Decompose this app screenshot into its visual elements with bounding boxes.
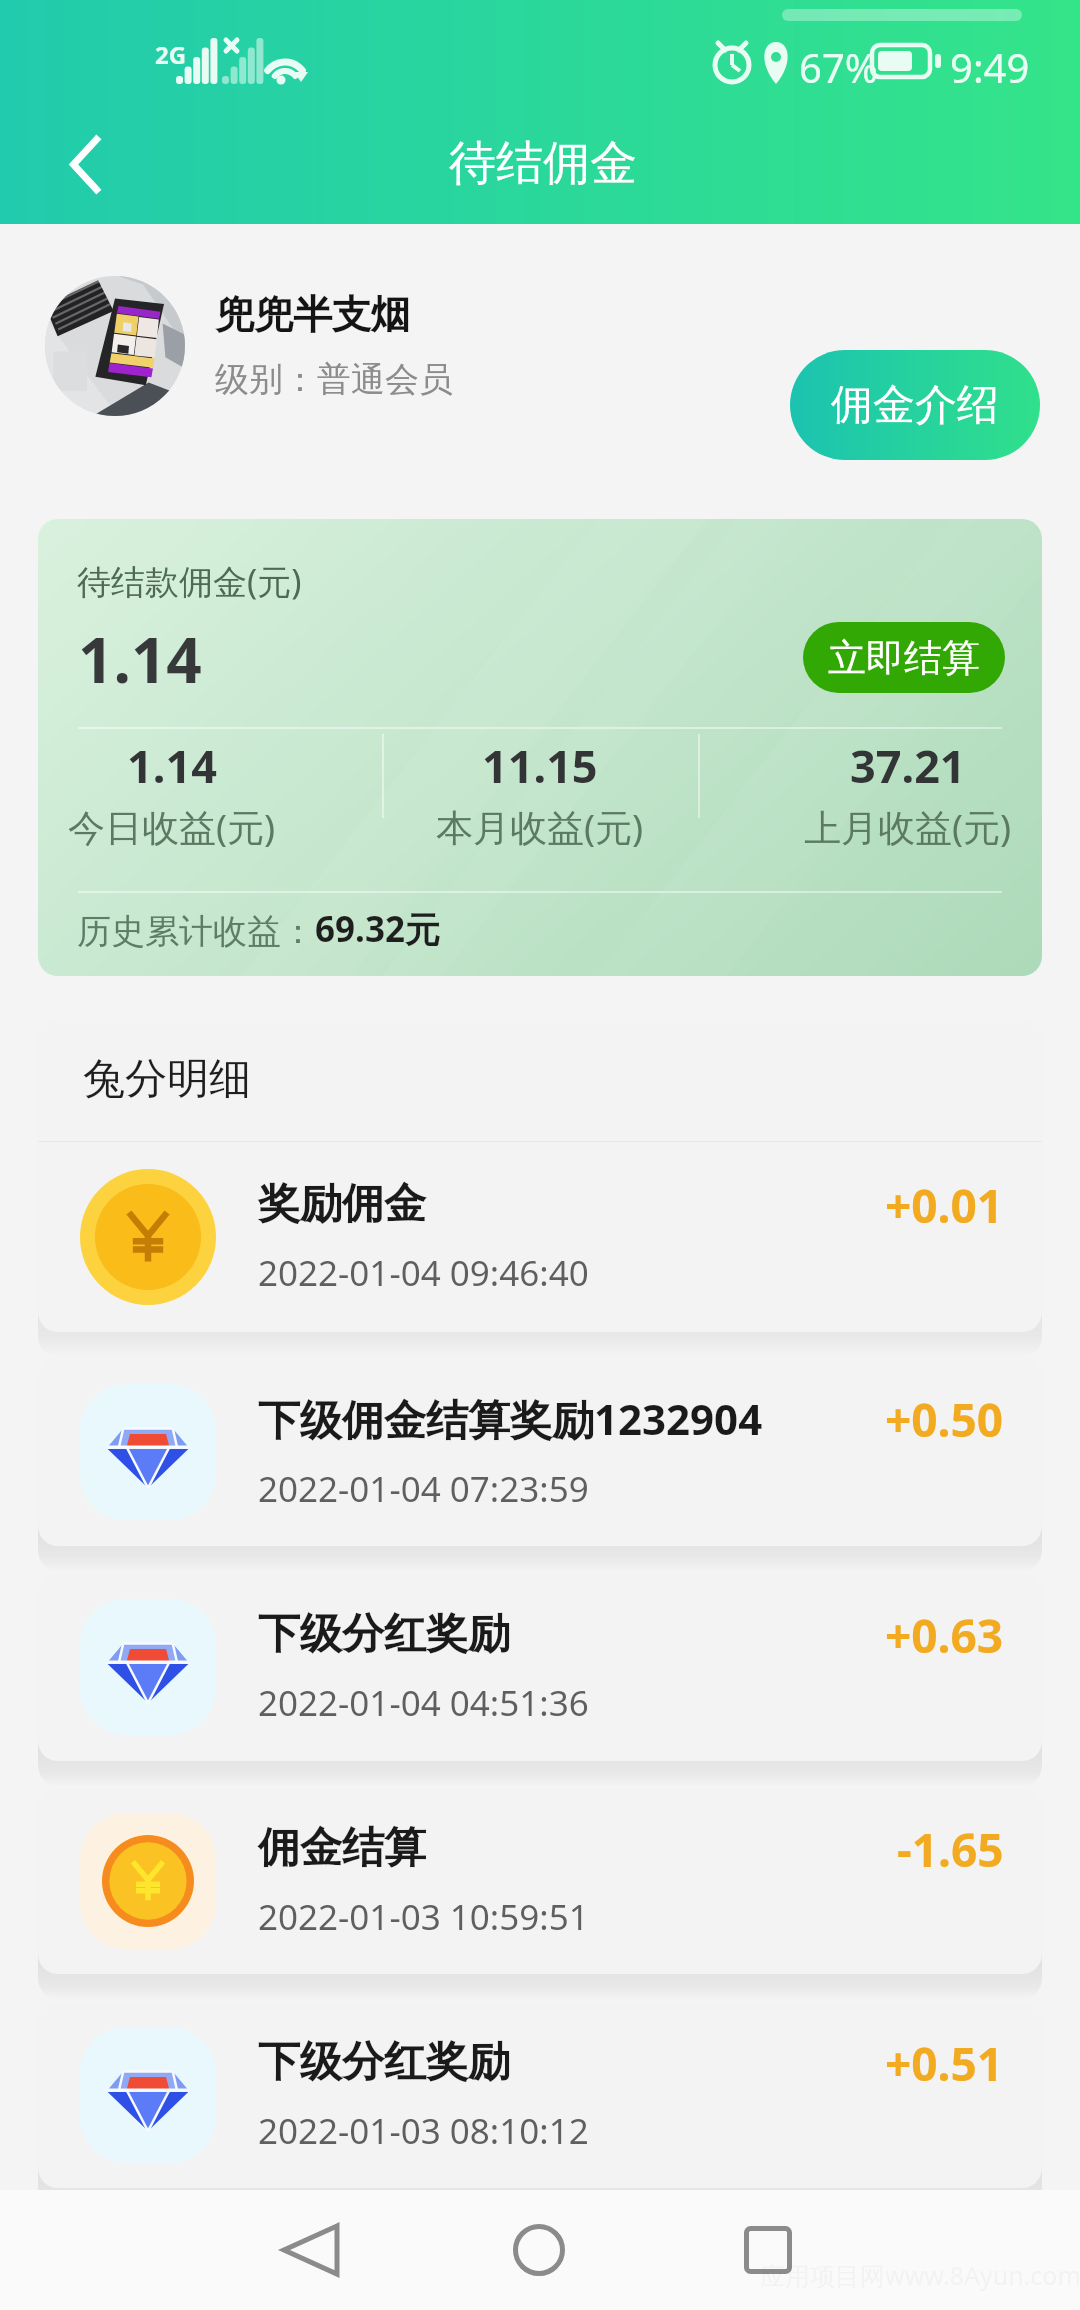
staticText: 69.32元 <box>315 905 440 953</box>
staticText: 2022-01-04 04:51:36 <box>258 1679 589 1727</box>
staticText: 2022-01-03 08:10:12 <box>258 2107 589 2155</box>
staticText: 立即结算 <box>828 634 980 682</box>
button[interactable]: 奖励佣金 <box>38 1142 1042 1332</box>
staticText: 下级分红奖励 <box>258 1608 510 1661</box>
staticText: 待结佣金 <box>449 134 637 193</box>
staticText: 2G <box>155 38 187 71</box>
staticText: 37.21 <box>850 735 966 796</box>
button[interactable]: Back <box>230 2190 390 2310</box>
staticText: 1.14 <box>127 735 217 796</box>
staticText: 级别：普通会员 <box>215 358 453 401</box>
staticText: 佣金介绍 <box>831 379 999 432</box>
staticText: +0.01 <box>885 1174 1004 1237</box>
staticText: 历史累计收益： <box>77 910 315 953</box>
staticText: 67% <box>799 40 878 94</box>
staticText: 兔分明细 <box>83 1053 251 1106</box>
staticText: 2022-01-03 10:59:51 <box>258 1893 589 1941</box>
staticText: +0.50 <box>885 1388 1004 1451</box>
button[interactable]: Back <box>40 118 130 210</box>
staticText: 下级分红奖励 <box>258 2036 510 2089</box>
staticText: 下级佣金结算奖励1232904 <box>258 1390 763 1447</box>
button[interactable]: 下级佣金结算奖励1232904 <box>38 1357 1042 1546</box>
button[interactable]: Recent apps <box>688 2190 848 2310</box>
staticText: +0.63 <box>885 1604 1004 1667</box>
staticText: 11.15 <box>482 735 598 796</box>
staticText: 今日收益(元) <box>68 801 276 852</box>
button[interactable]: 佣金介绍 <box>790 350 1040 460</box>
staticText: 应用项目网www.8Ayun.com <box>760 2258 1080 2292</box>
staticText: 2022-01-04 07:23:59 <box>258 1465 589 1513</box>
staticText: 本月收益(元) <box>436 801 644 852</box>
staticText: 佣金结算 <box>258 1822 426 1875</box>
staticText: 兜兜半支烟 <box>215 290 410 339</box>
staticText: 1.14 <box>78 617 202 701</box>
staticText: 2022-01-04 09:46:40 <box>258 1249 589 1297</box>
staticText: 奖励佣金 <box>258 1178 426 1231</box>
staticText: 待结款佣金(元) <box>77 558 302 604</box>
button[interactable]: 立即结算 <box>803 622 1005 693</box>
staticText: 9:49 <box>950 40 1030 94</box>
button[interactable]: Home <box>459 2190 619 2310</box>
button[interactable]: 下级分红奖励 <box>38 2002 1042 2188</box>
staticText: +0.51 <box>885 2032 1004 2095</box>
button[interactable]: 佣金结算 <box>38 1788 1042 1974</box>
button[interactable]: 下级分红奖励 <box>38 1573 1042 1761</box>
staticText: -1.65 <box>897 1818 1004 1881</box>
staticText: 上月收益(元) <box>804 801 1012 852</box>
